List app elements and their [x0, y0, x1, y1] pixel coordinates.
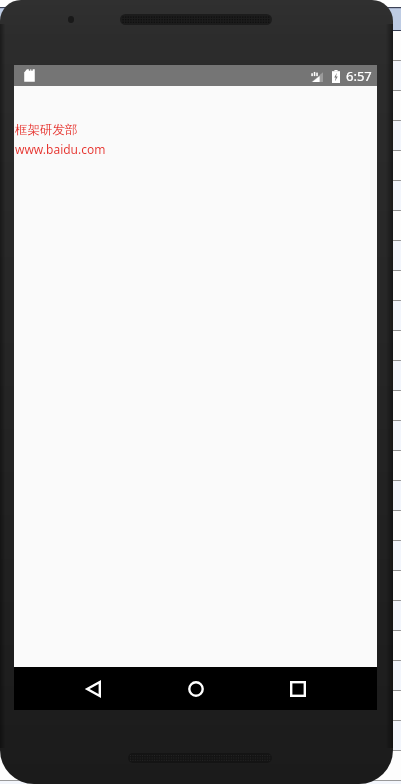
staticText: 6:57 — [346, 67, 372, 85]
button[interactable]: Back — [69, 667, 117, 710]
staticText: www.baidu.com — [15, 141, 106, 157]
staticText: 框架研发部 — [15, 122, 78, 138]
button[interactable]: Recents — [274, 667, 322, 710]
button[interactable]: Home — [172, 667, 220, 710]
